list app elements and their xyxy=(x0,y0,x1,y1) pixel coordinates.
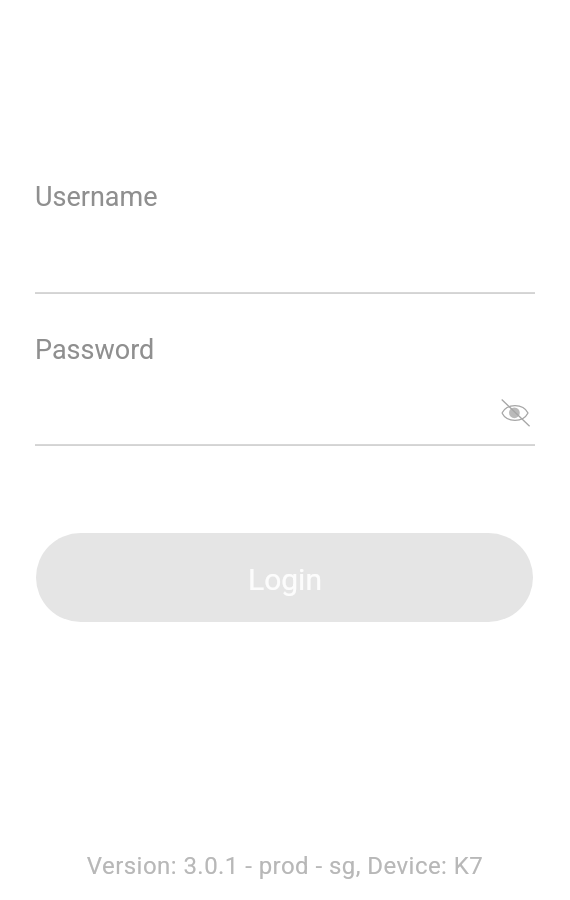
staticText: Username xyxy=(35,181,158,213)
staticText: Password xyxy=(35,334,155,366)
staticText: Login xyxy=(248,562,322,597)
staticText: Version: 3.0.1 - prod - sg, Device: K7 xyxy=(0,852,570,880)
button[interactable]: Show password xyxy=(495,393,535,433)
button[interactable]: Username xyxy=(35,178,535,294)
button[interactable]: Login xyxy=(36,533,533,622)
button[interactable]: Password xyxy=(35,331,535,448)
